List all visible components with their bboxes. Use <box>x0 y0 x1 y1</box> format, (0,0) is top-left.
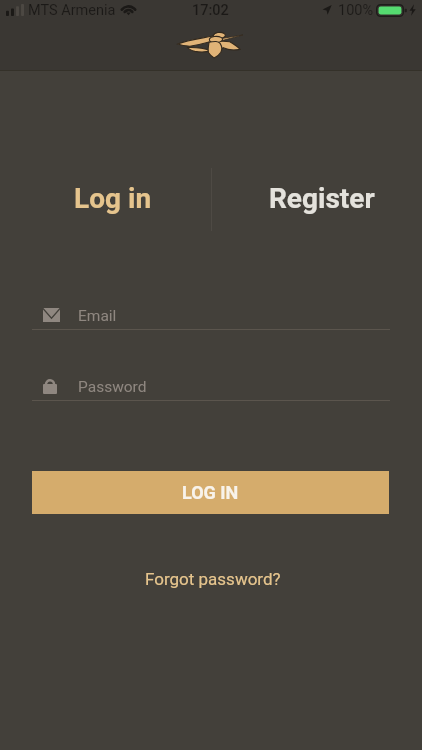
button[interactable]: Register <box>220 167 422 230</box>
staticText: Password <box>78 378 147 396</box>
staticText: MTS Armenia <box>28 2 116 19</box>
staticText: Forgot password? <box>145 569 281 589</box>
staticText: Email <box>78 307 117 325</box>
staticText: Register <box>269 182 375 215</box>
staticText: 17:02 <box>192 2 229 19</box>
button[interactable]: LOG IN <box>32 471 389 514</box>
staticText: Log in <box>74 182 152 215</box>
staticText: LOG IN <box>182 482 239 503</box>
button[interactable]: Log in <box>11 167 215 230</box>
button[interactable]: Forgot password? <box>130 564 296 594</box>
staticText: 100% <box>338 2 374 19</box>
